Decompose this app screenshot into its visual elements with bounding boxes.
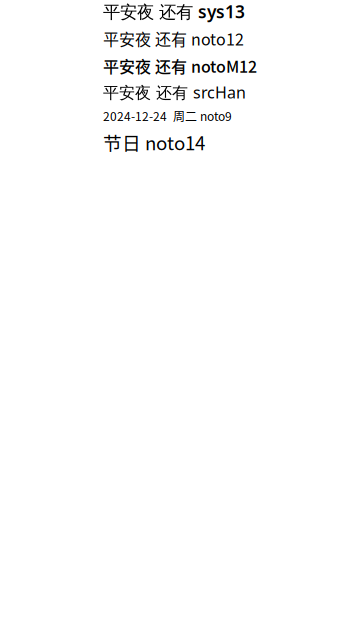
staticText: 平安夜 还有 notoM12 (103, 54, 257, 77)
staticText: 节日 noto14 (103, 128, 205, 155)
staticText: 平安夜 还有 noto12 (103, 27, 244, 50)
staticText: 平安夜 还有 srcHan (103, 81, 246, 103)
staticText: 2024-12-24 周二 noto9 (103, 107, 232, 124)
staticText: 平安夜 还有 sys13 (103, 0, 245, 23)
